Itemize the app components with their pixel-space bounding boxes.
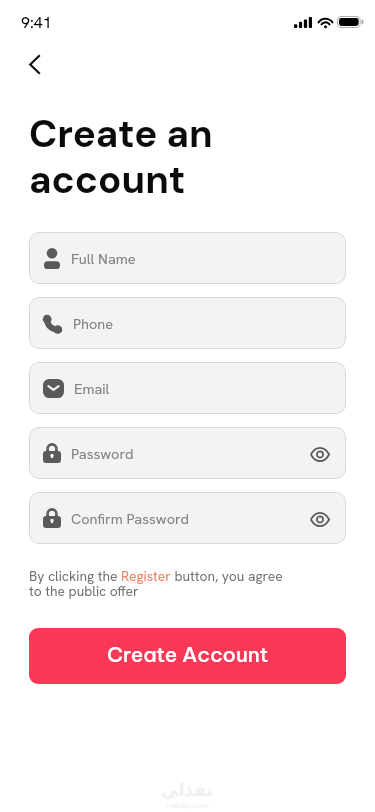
- staticText: Create an account: [29, 109, 213, 205]
- staticText: 9:41: [21, 12, 52, 33]
- staticText: Create Account: [107, 641, 269, 667]
- staticText: Full Name: [71, 249, 136, 268]
- staticText: Password: [71, 444, 134, 463]
- button[interactable]: Create Account: [29, 628, 346, 684]
- button[interactable]: Show password: [304, 504, 334, 532]
- staticText: Confirm Password: [71, 509, 190, 528]
- button[interactable]: Show password: [304, 439, 334, 467]
- button[interactable]: Confirm Password: [29, 492, 346, 544]
- button[interactable]: Email: [29, 362, 346, 414]
- button[interactable]: Phone: [29, 297, 346, 349]
- staticText: nafezly.com: [166, 800, 209, 810]
- staticText: By clicking the Register button, you agr…: [29, 567, 295, 600]
- button[interactable]: Full Name: [29, 232, 346, 284]
- staticText: نفذلي: [161, 780, 214, 800]
- button[interactable]: Password: [29, 427, 346, 479]
- staticText: Email: [74, 379, 110, 398]
- staticText: Phone: [73, 314, 114, 333]
- button[interactable]: Back: [11, 40, 59, 88]
